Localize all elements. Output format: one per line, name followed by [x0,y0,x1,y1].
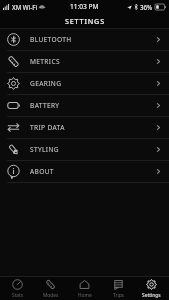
button[interactable]: Home [68,279,101,299]
staticText: STYLING [30,145,59,154]
button[interactable]: TRIP DATA [0,117,169,139]
staticText: METRICS [30,57,60,66]
staticText: SETTINGS [65,16,105,26]
staticText: 11:03 PM [70,2,99,11]
staticText: BATTERY [30,101,60,110]
button[interactable]: Modes [34,279,67,299]
staticText: BLUETOOTH [30,35,72,44]
button[interactable]: Trips [102,279,135,299]
button[interactable]: Settings [135,279,168,299]
staticText: TRIP DATA [30,123,65,132]
button[interactable]: BLUETOOTH [0,29,169,51]
staticText: GEARING [30,79,62,88]
staticText: Settings [142,292,161,299]
staticText: XM Wi-Fi [12,3,37,11]
staticText: Home [78,292,92,299]
button[interactable]: STYLING [0,139,169,161]
button[interactable]: Stats [1,279,34,299]
button[interactable]: ABOUT [0,161,169,183]
staticText: 36% [140,3,153,11]
staticText: Trips [113,292,124,299]
staticText: Modes [43,292,59,299]
button[interactable]: GEARING [0,73,169,95]
button[interactable]: METRICS [0,51,169,73]
button[interactable]: BATTERY [0,95,169,117]
staticText: Stats [12,292,24,299]
staticText: ABOUT [30,167,54,176]
